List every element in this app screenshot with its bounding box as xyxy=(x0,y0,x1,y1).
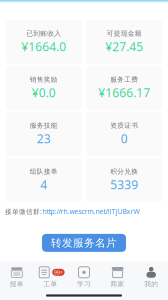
staticText: 服务工费 xyxy=(110,75,138,84)
staticText: 我的 xyxy=(144,280,158,288)
button[interactable]: 我的 xyxy=(134,267,168,288)
staticText: 工单 xyxy=(43,280,57,288)
staticText: 4 xyxy=(40,177,47,192)
staticText: 转发服务名片 xyxy=(51,236,117,249)
button[interactable]: 99+ xyxy=(34,267,67,288)
button[interactable]: http://rh.wescrm.net/!lTjUBxrW xyxy=(42,207,139,216)
staticText: 报单 xyxy=(10,280,24,288)
staticText: 99+ xyxy=(54,269,63,276)
staticText: 0 xyxy=(121,131,128,146)
button[interactable]: 商家 xyxy=(101,267,134,288)
staticText: 已到账收入 xyxy=(26,29,61,38)
staticText: 销售奖励 xyxy=(30,75,58,84)
button[interactable]: 转发服务名片 xyxy=(42,234,126,252)
staticText: ¥27.45 xyxy=(105,39,143,54)
button[interactable]: 销售奖励 xyxy=(6,66,81,110)
button[interactable]: 服务技能 xyxy=(6,112,81,156)
staticText: 商家 xyxy=(111,280,125,288)
button[interactable]: 组队接单 xyxy=(6,158,81,202)
button[interactable]: 学习 xyxy=(67,267,101,288)
button[interactable]: 报单 xyxy=(0,267,34,288)
staticText: 接单微信群: xyxy=(5,207,42,216)
staticText: 5339 xyxy=(110,177,138,192)
button[interactable]: 可提现金额 xyxy=(86,20,162,64)
button[interactable]: 资质证书 xyxy=(86,112,162,156)
button[interactable]: 服务工费 xyxy=(86,66,162,110)
staticText: ¥1664.0 xyxy=(21,39,66,54)
staticText: 组队接单 xyxy=(30,167,58,176)
staticText: 服务技能 xyxy=(30,121,58,130)
button[interactable]: 积分兑换 xyxy=(86,158,162,202)
staticText: 可提现金额 xyxy=(107,29,142,38)
staticText: ¥1666.17 xyxy=(98,85,150,100)
staticText: ¥0.0 xyxy=(32,85,56,100)
staticText: 积分兑换 xyxy=(110,167,138,176)
button[interactable]: 已到账收入 xyxy=(6,20,81,64)
staticText: 资质证书 xyxy=(110,121,138,130)
staticText: 23 xyxy=(37,131,51,146)
staticText: http://rh.wescrm.net/!lTjUBxrW xyxy=(42,207,139,216)
staticText: 学习 xyxy=(77,280,91,288)
